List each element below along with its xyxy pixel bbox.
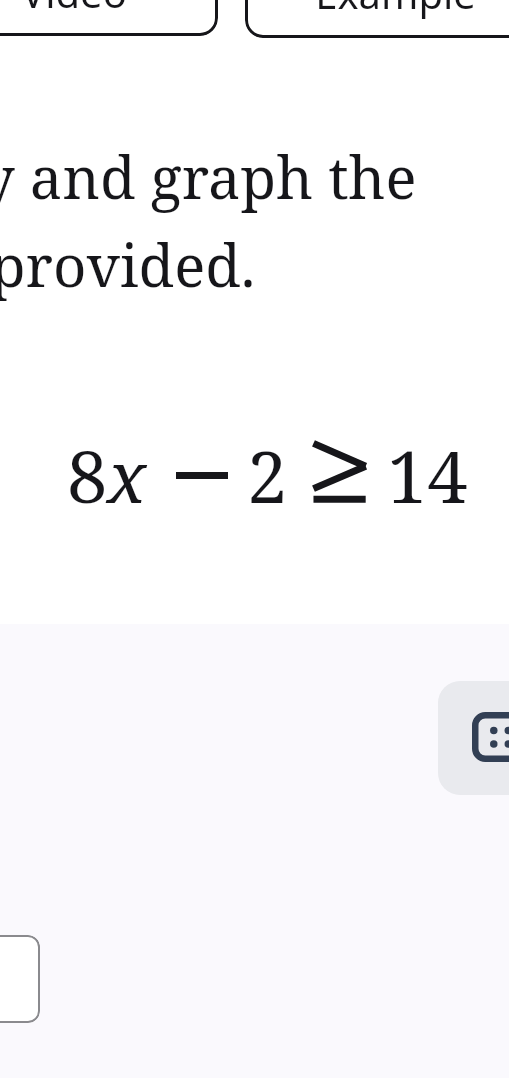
staticText: Video [21,0,127,19]
button[interactable] [0,935,40,1023]
staticText: x [107,426,147,524]
button[interactable]: Video [0,0,218,36]
staticText: y and graph the [0,137,417,216]
staticText: provided. [0,225,256,304]
button[interactable]: Toggle keyboard [438,681,509,795]
staticText: 8 [67,426,108,524]
staticText: Example [315,0,476,20]
button[interactable]: Example [245,0,509,38]
staticText: 2 [247,426,288,524]
staticText: 14 [387,426,468,524]
